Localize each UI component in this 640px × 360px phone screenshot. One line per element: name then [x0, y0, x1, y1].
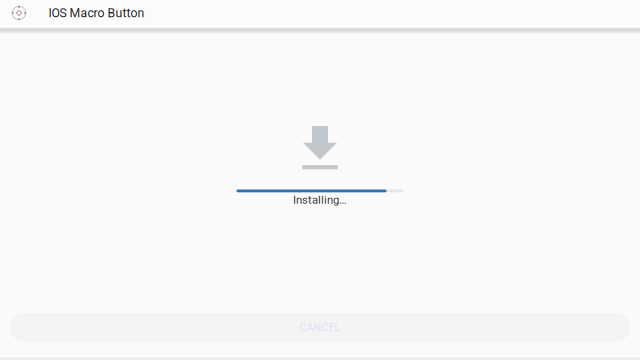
staticText: CANCEL	[299, 321, 340, 334]
staticText: Installing…	[293, 193, 347, 207]
staticText: IOS Macro Button	[48, 6, 144, 20]
